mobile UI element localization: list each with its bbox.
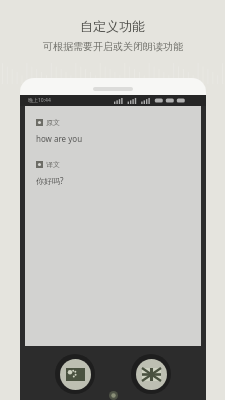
staticText: how are you — [36, 133, 83, 144]
staticText: 原文 — [46, 118, 60, 127]
staticText: 自定义功能 — [80, 18, 145, 34]
staticText: 你好吗? — [36, 175, 64, 186]
staticText: 可根据需要开启或关闭朗读功能 — [43, 40, 183, 53]
button[interactable]: Chinese — [55, 354, 95, 394]
button[interactable]: English — [131, 354, 171, 394]
button[interactable]: Home — [109, 391, 118, 400]
staticText: 译文 — [46, 160, 60, 169]
staticText: 晚上10:44 — [28, 97, 51, 104]
